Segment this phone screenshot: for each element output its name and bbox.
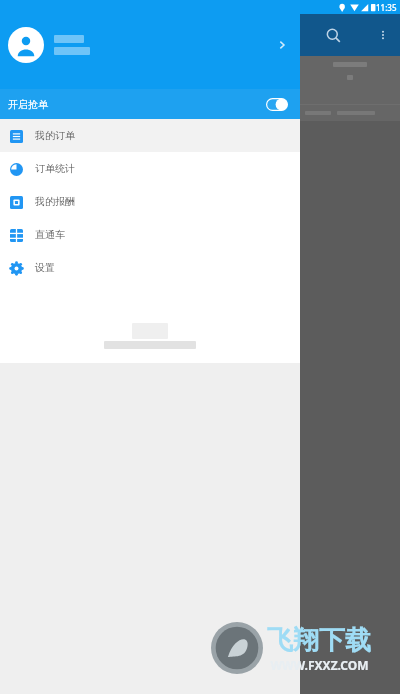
other: Profile — [275, 38, 289, 52]
staticText: WWW.FXXZ.COM — [270, 657, 369, 673]
button[interactable]: 设置 — [0, 251, 300, 284]
button[interactable]: 我的订单 — [0, 119, 300, 152]
button[interactable]: 开启抢单 — [0, 89, 300, 119]
button[interactable]: More options — [371, 23, 395, 47]
button[interactable]: 订单统计 — [0, 152, 300, 185]
button[interactable]: Profile — [0, 0, 300, 89]
staticText: 我的报酬 — [35, 195, 75, 208]
button[interactable]: 我的报酬 — [0, 185, 300, 218]
staticText: 11:35 — [376, 2, 397, 13]
staticText: 直通车 — [35, 228, 65, 241]
staticText: 飞翔下载 — [267, 624, 371, 657]
button[interactable]: Search — [319, 21, 347, 49]
staticText: 开启抢单 — [8, 98, 48, 111]
staticText: 我的订单 — [35, 129, 75, 142]
staticText: 订单统计 — [35, 162, 75, 175]
button[interactable]: 直通车 — [0, 218, 300, 251]
staticText: 设置 — [35, 261, 55, 274]
